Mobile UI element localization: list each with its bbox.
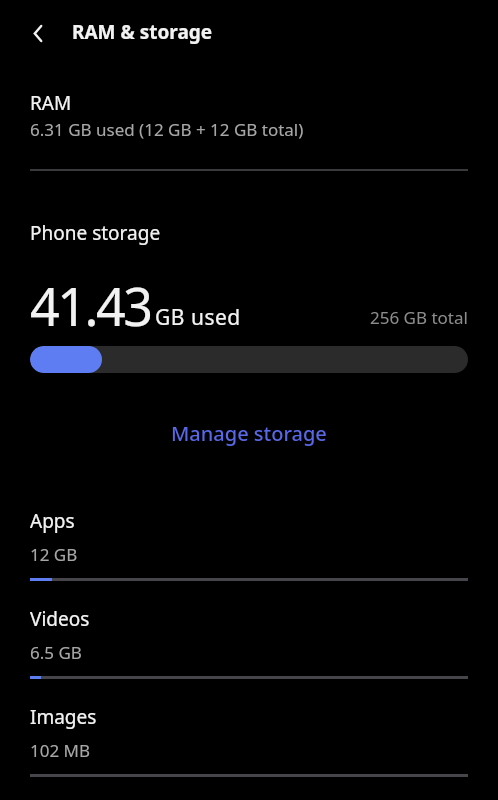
staticText: GB used [155,303,241,332]
staticText: Manage storage [171,420,327,447]
staticText: 6.5 GB [30,641,82,664]
button[interactable]: Manage storage [157,414,341,453]
staticText: 12 GB [30,543,78,566]
staticText: Apps [30,508,75,534]
staticText: 256 GB total [370,306,468,329]
staticText: RAM [30,90,72,116]
button[interactable]: Videos [0,600,498,684]
staticText: Phone storage [30,220,161,246]
staticText: 41.43 [30,270,151,341]
staticText: 102 MB [30,739,91,762]
staticText: Images [30,704,97,730]
button[interactable]: Images [0,698,498,782]
staticText: 6.31 GB used (12 GB + 12 GB total) [30,118,304,141]
staticText: Videos [30,606,90,632]
staticText: RAM & storage [72,19,213,45]
button[interactable]: Apps [0,502,498,586]
button[interactable] [18,13,58,53]
